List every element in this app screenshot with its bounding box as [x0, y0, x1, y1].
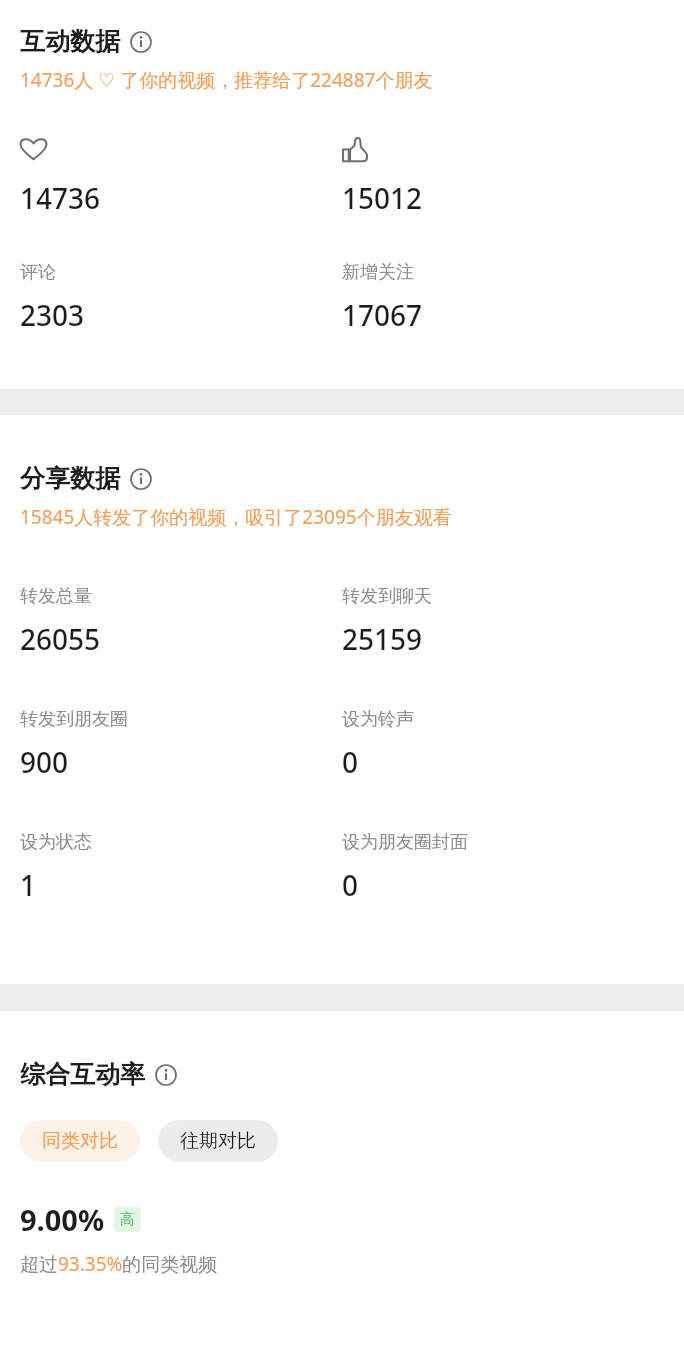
staticText: 900 — [20, 743, 69, 781]
staticText: 转发到朋友圈 — [20, 708, 128, 731]
staticText: 14736人 ♡ 了你的视频，推荐给了224887个朋友 — [20, 67, 433, 93]
staticText: 1 — [20, 866, 37, 904]
staticText: 超过93.35%的同类视频 — [20, 1251, 218, 1277]
staticText: 26055 — [20, 620, 101, 658]
button[interactable]: 同类对比 — [20, 1120, 140, 1162]
other: Likes — [20, 137, 47, 161]
other: Info — [130, 468, 152, 490]
staticText: 设为朋友圈封面 — [342, 831, 468, 854]
staticText: 分享数据 — [20, 463, 120, 494]
staticText: 转发到聊天 — [342, 585, 432, 608]
staticText: 评论 — [20, 261, 56, 284]
staticText: 高 — [120, 1210, 135, 1229]
staticText: 0 — [342, 743, 359, 781]
staticText: 2303 — [20, 296, 85, 334]
staticText: 9.00% — [20, 1200, 105, 1239]
staticText: 互动数据 — [20, 26, 120, 57]
staticText: 设为铃声 — [342, 708, 414, 731]
staticText: 25159 — [342, 620, 423, 658]
staticText: 往期对比 — [180, 1129, 256, 1153]
other: Thumbs up — [342, 137, 369, 164]
other: Info — [130, 31, 152, 53]
staticText: 新增关注 — [342, 261, 414, 284]
staticText: 15845人转发了你的视频，吸引了23095个朋友观看 — [20, 504, 452, 530]
staticText: 同类对比 — [42, 1129, 118, 1153]
staticText: 0 — [342, 866, 359, 904]
staticText: 14736 — [20, 179, 101, 217]
staticText: 17067 — [342, 296, 423, 334]
staticText: 设为状态 — [20, 831, 92, 854]
button[interactable]: 往期对比 — [158, 1120, 278, 1162]
staticText: 转发总量 — [20, 585, 92, 608]
staticText: 综合互动率 — [20, 1059, 145, 1090]
other: Info — [155, 1064, 177, 1086]
staticText: 15012 — [342, 179, 423, 217]
